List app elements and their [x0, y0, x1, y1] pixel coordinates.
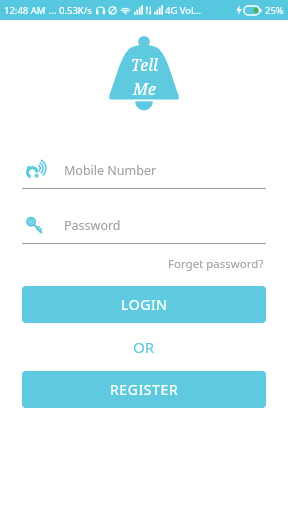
- button[interactable]: Forget password?: [166, 254, 266, 274]
- staticText: Me: [133, 78, 156, 100]
- staticText: OR: [133, 337, 155, 357]
- staticText: … 0.53K/s: [49, 4, 92, 17]
- button[interactable]: Mobile number: [22, 156, 266, 189]
- staticText: 4G VoL..: [165, 4, 202, 17]
- staticText: LOGIN: [121, 295, 168, 314]
- staticText: Forget password?: [168, 256, 264, 272]
- other: Mobile number: [22, 158, 46, 182]
- staticText: 25%: [265, 4, 284, 17]
- staticText: Password: [64, 217, 121, 234]
- staticText: Tell: [131, 54, 158, 76]
- staticText: Mobile Number: [64, 162, 157, 179]
- button[interactable]: REGISTER: [22, 371, 266, 408]
- staticText: 12:48 AM: [4, 4, 46, 17]
- button[interactable]: Password: [22, 211, 266, 244]
- staticText: REGISTER: [110, 380, 179, 399]
- button[interactable]: LOGIN: [22, 286, 266, 323]
- other: Password: [22, 213, 46, 237]
